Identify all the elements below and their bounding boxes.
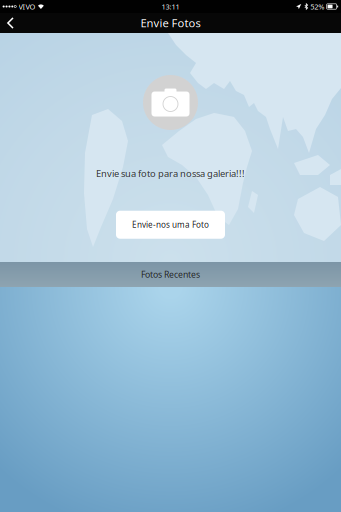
staticText: Fotos Recentes	[141, 269, 200, 280]
button[interactable]: Back	[0, 13, 24, 33]
staticText: 52%	[310, 1, 324, 12]
staticText: Envie-nos uma Foto	[132, 219, 209, 230]
staticText: Envie Fotos	[140, 15, 200, 31]
staticText: 13:11	[161, 1, 179, 12]
staticText: VIVO	[18, 1, 35, 12]
staticText: Envie sua foto para nossa galeria!!!	[96, 167, 245, 180]
button[interactable]: Envie-nos uma Foto	[116, 211, 225, 239]
